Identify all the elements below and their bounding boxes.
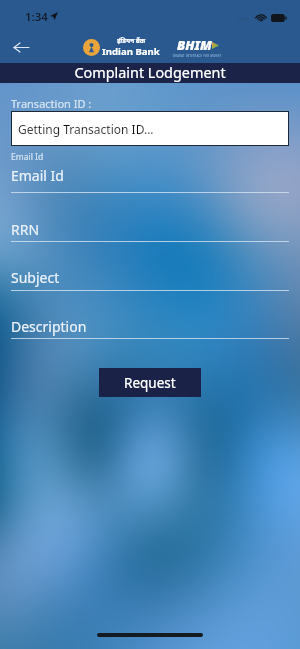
staticText: Email Id (11, 151, 44, 163)
staticText: Description (11, 317, 87, 336)
staticText: Email Id (11, 166, 64, 185)
staticText: RRN (11, 220, 40, 239)
staticText: Transaction ID : (11, 96, 92, 111)
button[interactable]: Back (8, 34, 34, 60)
staticText: इंडियन बैंक (117, 36, 146, 45)
button[interactable]: Getting Transaction ID... (11, 111, 289, 146)
button[interactable]: Request (99, 368, 201, 397)
staticText: Indian Bank (102, 45, 160, 58)
staticText: 1:34 (25, 9, 48, 25)
staticText: BHIM (177, 36, 212, 54)
staticText: Request (124, 374, 176, 392)
staticText: Getting Transaction ID... (18, 121, 154, 137)
staticText: BHARAT INTERFACE FOR MONEY (173, 54, 222, 58)
staticText: Subject (11, 268, 60, 287)
staticText: Complaint Lodgement (74, 63, 226, 83)
